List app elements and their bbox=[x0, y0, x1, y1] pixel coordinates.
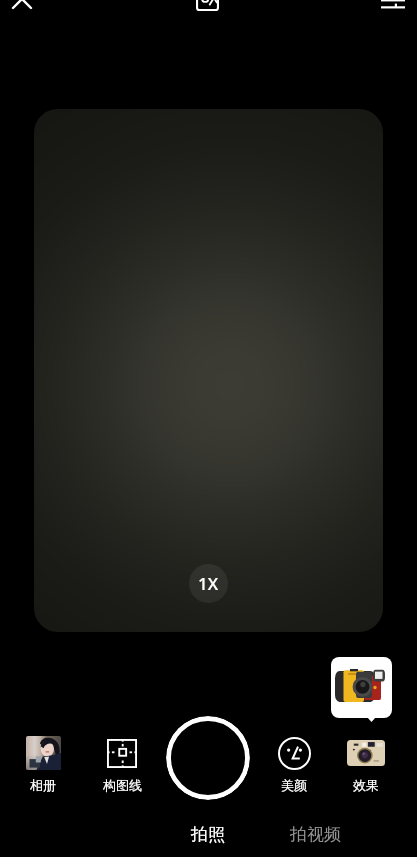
button[interactable]: 相册 bbox=[13, 736, 73, 793]
button[interactable]: 拍视频 bbox=[278, 818, 352, 850]
button[interactable]: Shutter bbox=[166, 716, 250, 800]
button[interactable]: 1X bbox=[189, 564, 228, 603]
button[interactable]: Effect preview bbox=[331, 657, 392, 718]
staticText: 拍照 bbox=[191, 824, 225, 845]
staticText: 构图线 bbox=[103, 777, 142, 793]
staticText: 效果 bbox=[353, 777, 379, 793]
button[interactable]: 美颜 bbox=[264, 736, 324, 793]
staticText: 美颜 bbox=[281, 777, 307, 793]
button[interactable]: Close bbox=[3, 0, 40, 14]
staticText: 相册 bbox=[30, 777, 56, 793]
button[interactable]: 效果 bbox=[336, 736, 396, 793]
staticText: 1X bbox=[198, 572, 219, 595]
button[interactable]: Share bbox=[189, 0, 226, 14]
button[interactable]: 构图线 bbox=[92, 736, 152, 793]
staticText: 拍视频 bbox=[290, 824, 341, 845]
button[interactable]: 拍照 bbox=[178, 818, 238, 850]
button[interactable]: Settings bbox=[375, 0, 411, 14]
